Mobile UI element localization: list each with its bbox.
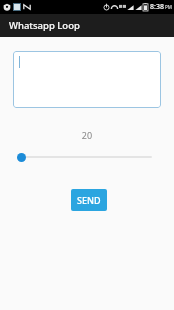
button[interactable]: Message input bbox=[13, 51, 161, 108]
button[interactable]: Repeat count slider bbox=[0, 149, 174, 165]
staticText: Whatsapp Loop bbox=[9, 19, 80, 32]
staticText: 8:38 bbox=[150, 2, 164, 12]
staticText: SEND bbox=[77, 194, 101, 206]
staticText: PM bbox=[165, 4, 172, 10]
button[interactable]: SEND bbox=[71, 189, 107, 211]
staticText: 20 bbox=[0, 129, 174, 141]
